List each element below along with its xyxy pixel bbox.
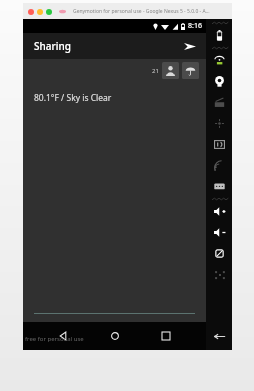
staticText: 21 [152, 67, 159, 75]
button[interactable]: Recents [154, 324, 178, 348]
button[interactable]: Back [209, 326, 230, 347]
button[interactable]: Rotate [209, 243, 230, 264]
button[interactable]: Home [103, 324, 127, 348]
button[interactable]: Battery [209, 25, 230, 46]
staticText: Sharing [34, 39, 71, 53]
button[interactable]: Privacy [162, 62, 179, 79]
button[interactable]: SMS [209, 176, 230, 197]
staticText: 80.1°F / Sky is Clear [34, 92, 112, 104]
button[interactable]: Volume down [209, 222, 230, 243]
button[interactable]: Send [180, 36, 200, 56]
button[interactable]: Network [209, 155, 230, 176]
button[interactable]: Disk IO [209, 92, 230, 113]
button[interactable]: Camera [209, 71, 230, 92]
button[interactable]: Pixel perfect [209, 264, 230, 285]
button[interactable]: Identifiers [209, 134, 230, 155]
button[interactable]: Move [209, 113, 230, 134]
button[interactable]: Weather [182, 62, 199, 79]
staticText: free for personal use [25, 335, 84, 343]
button[interactable]: Volume up [209, 201, 230, 222]
button[interactable]: GPS [209, 50, 230, 71]
staticText: 8:16 [188, 21, 202, 31]
button[interactable]: Back [51, 324, 75, 348]
staticText: Genymotion for personal use - Google Nex… [73, 8, 210, 15]
button[interactable] [34, 304, 195, 314]
